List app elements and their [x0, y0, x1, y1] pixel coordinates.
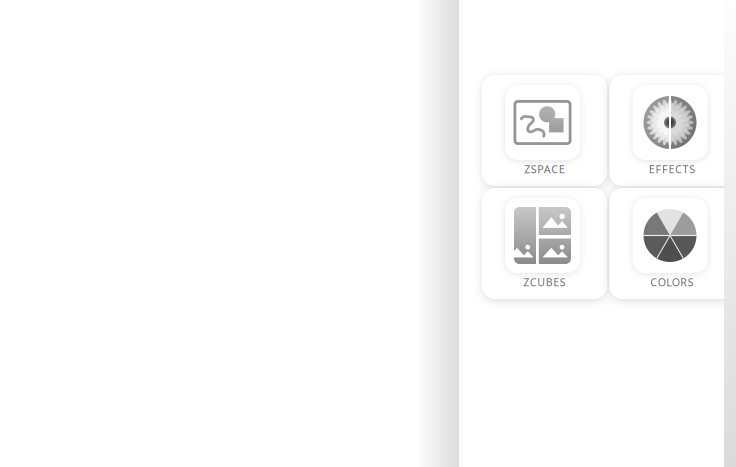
staticText: ZCUBES	[523, 275, 566, 289]
button[interactable]: COLORS	[609, 188, 734, 299]
button[interactable]: ZSPACE	[482, 75, 607, 186]
staticText: COLORS	[650, 275, 694, 289]
staticText: ZSPACE	[524, 162, 565, 176]
staticText: EFFECTS	[649, 162, 695, 176]
button[interactable]: ZCUBES	[482, 188, 607, 299]
button[interactable]: EFFECTS	[609, 75, 734, 186]
